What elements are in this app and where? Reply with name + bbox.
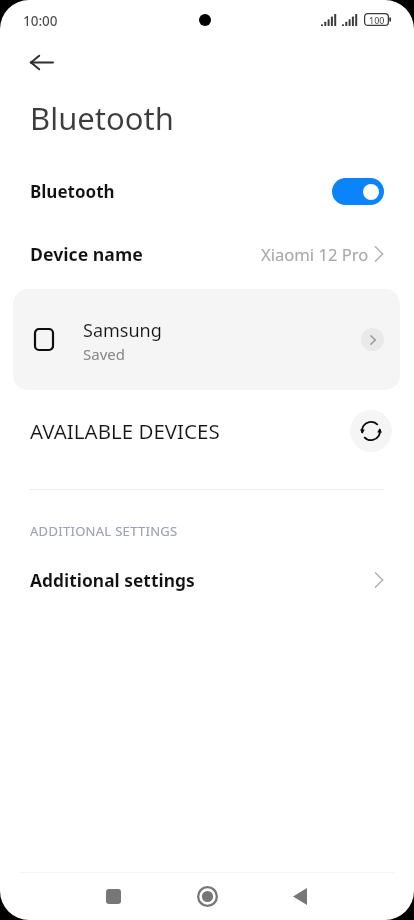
button[interactable]: Bluetooth (0, 165, 414, 217)
button[interactable]: Refresh (350, 410, 392, 452)
staticText: Samsung (83, 318, 162, 343)
staticText: 10:00 (23, 12, 58, 30)
button[interactable]: Device name (0, 228, 414, 280)
staticText: 100 (369, 14, 385, 26)
button[interactable]: Home (183, 872, 231, 920)
staticText: ADDITIONAL SETTINGS (30, 522, 178, 540)
staticText: AVAILABLE DEVICES (30, 417, 220, 445)
staticText: Xiaomi 12 Pro (261, 243, 369, 266)
button[interactable]: Back (20, 40, 62, 82)
staticText: Device name (30, 242, 143, 266)
button[interactable]: Samsung (13, 289, 400, 390)
button[interactable]: Back (276, 872, 324, 920)
staticText: Bluetooth (30, 180, 115, 203)
staticText: Saved (83, 344, 125, 364)
button[interactable]: Recent apps (89, 872, 137, 920)
button[interactable]: Device settings (361, 328, 384, 351)
staticText: Bluetooth (30, 97, 174, 139)
staticText: Additional settings (30, 568, 195, 592)
button[interactable]: Additional settings (0, 558, 414, 602)
